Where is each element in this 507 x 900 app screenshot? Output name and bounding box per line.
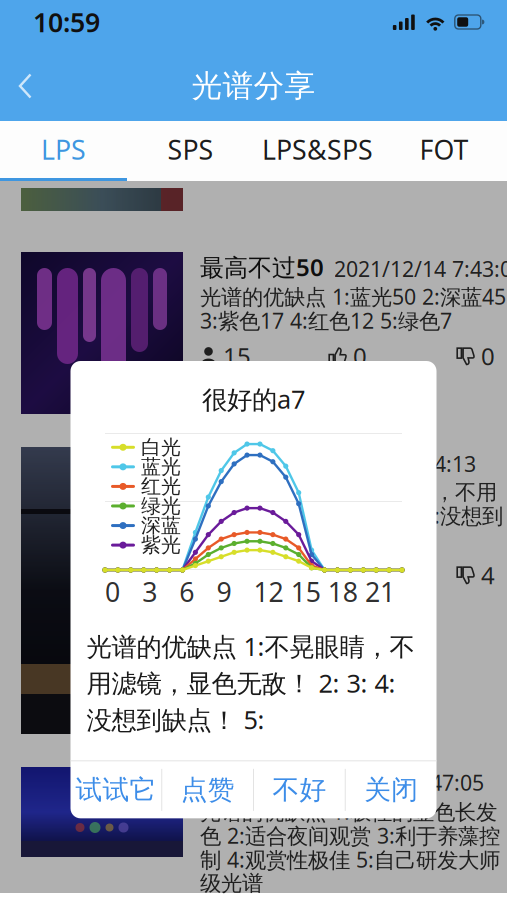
staticText: 滤镜，显色无敌！ 2: 3: 4:没想到 <box>200 501 503 530</box>
staticText: 制 4:观赏性极佳 5:自己研发大师 <box>200 845 500 874</box>
staticText: 光谱的优缺点 1:蓝光50 2:深蓝45 <box>200 282 506 311</box>
button[interactable]: 大师级 <box>0 767 507 899</box>
staticText: 红光 <box>141 474 181 499</box>
staticText: 不好 <box>272 773 326 806</box>
staticText: 大师级 <box>200 767 272 797</box>
staticText: 15 <box>291 574 321 609</box>
staticText: 白光 <box>141 435 181 460</box>
button[interactable]: 不好 <box>254 761 345 818</box>
staticText: 级光谱 <box>200 870 263 897</box>
button[interactable]: Back <box>0 58 53 113</box>
staticText: 好的a7 <box>200 446 276 478</box>
staticText: 4 <box>481 559 495 591</box>
staticText: 3 <box>142 574 157 609</box>
staticText: LPS <box>41 132 86 167</box>
button[interactable]: 点赞 <box>162 761 253 818</box>
staticText: 点赞 <box>181 773 235 806</box>
staticText: SPS <box>167 132 213 167</box>
staticText: 6 <box>179 574 194 609</box>
button[interactable]: 试试它 <box>70 761 161 818</box>
staticText: 色 2:适合夜间观赏 3:利于养藻控 <box>200 821 500 850</box>
staticText: 光谱的优缺点 1:极佳的显色长发 <box>200 797 497 826</box>
staticText: 蓝光 <box>141 455 181 479</box>
staticText: 9 <box>216 574 231 609</box>
button[interactable]: SPS <box>127 121 254 181</box>
staticText: 21 <box>365 574 395 609</box>
staticText: 试试它 <box>75 773 156 806</box>
staticText: 没想到缺点！ 5: <box>86 703 264 736</box>
staticText: 关闭 <box>364 773 418 806</box>
staticText: 光谱的优缺点 1:不晃眼睛，不用 <box>200 477 497 506</box>
button[interactable]: 最高不过50 <box>0 252 507 414</box>
staticText: 用滤镜，显色无敌！ 2: 3: 4: <box>86 666 395 700</box>
staticText: 0 <box>105 574 120 609</box>
staticText: 2021/12/14 7:43:07 <box>334 255 507 283</box>
button[interactable]: LPS <box>0 121 127 181</box>
staticText: 18 <box>328 574 358 609</box>
button[interactable]: LPS&SPS <box>254 121 381 181</box>
staticText: FOT <box>419 132 468 167</box>
staticText: 15 <box>223 340 251 372</box>
staticText: 很好的a7 <box>202 382 305 416</box>
staticText: 光谱的优缺点 1:不晃眼睛，不 <box>86 629 414 663</box>
staticText: 3:紫色17 4:红色12 5:绿色7 <box>200 306 452 335</box>
staticText: 缺点！ 5: <box>200 525 287 554</box>
staticText: 2021/12/11 20:47:05 <box>282 768 484 797</box>
staticText: 0 <box>481 340 495 372</box>
staticText: 10:59 <box>33 4 100 40</box>
staticText: 绿光 <box>141 494 181 518</box>
staticText: 深蓝 <box>141 513 181 538</box>
staticText: 0 <box>353 340 367 372</box>
button[interactable]: 关闭 <box>346 761 437 818</box>
button[interactable]: FOT <box>381 121 507 181</box>
staticText: 最高不过50 <box>200 251 324 283</box>
staticText: 光谱分享 <box>191 67 315 105</box>
staticText: 紫光 <box>141 533 181 557</box>
staticText: 6 <box>353 559 367 591</box>
button[interactable]: 好的a7 <box>0 447 507 734</box>
staticText: 12 <box>253 574 283 609</box>
staticText: 2021/12/13 9:14:13 <box>286 450 476 478</box>
staticText: LPS&SPS <box>262 132 373 167</box>
staticText: 23 <box>223 559 251 591</box>
